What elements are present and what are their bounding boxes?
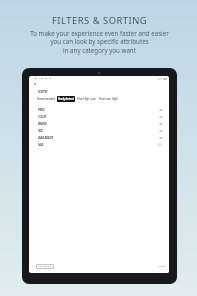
staticText: AVAILABILITY (38, 136, 54, 140)
button[interactable]: AVAILABILITY (29, 134, 169, 141)
button[interactable]: Price: High - Low (76, 96, 97, 102)
staticText: To make your experience even faster and … (30, 29, 169, 55)
button[interactable]: BRAND (29, 120, 169, 127)
staticText: SALE (38, 143, 44, 147)
staticText: PRICE (38, 108, 45, 112)
button[interactable]: PRICE (29, 106, 169, 113)
staticText: CLEAR (159, 265, 166, 268)
button[interactable]: SIZE (29, 127, 169, 134)
staticText: COLOR (38, 115, 47, 119)
staticText: SIZE (38, 129, 43, 133)
staticText: VIEW RESULTS (38, 265, 52, 268)
staticText: Price: High - Low (77, 97, 96, 101)
button[interactable]: Price: Low - High (98, 96, 119, 102)
staticText: 1:08 Tue, Mar 19 (33, 77, 52, 80)
button[interactable]: VIEW RESULTS (36, 264, 54, 269)
staticText: Recommended (37, 97, 55, 101)
staticText: BRAND (38, 122, 47, 126)
button[interactable]: Close (33, 82, 37, 86)
staticText: FILTERS & SORTING (52, 14, 148, 27)
button[interactable]: SALE (29, 141, 169, 148)
button[interactable]: COLOR (29, 113, 169, 120)
staticText: Newly Arrived (58, 97, 74, 101)
button[interactable]: Recommended (36, 96, 56, 102)
button[interactable]: Newly Arrived (57, 96, 75, 102)
staticText: Price: Low - High (99, 97, 118, 101)
staticText: SORT BY (38, 90, 48, 94)
button[interactable]: CLEAR (158, 264, 167, 269)
